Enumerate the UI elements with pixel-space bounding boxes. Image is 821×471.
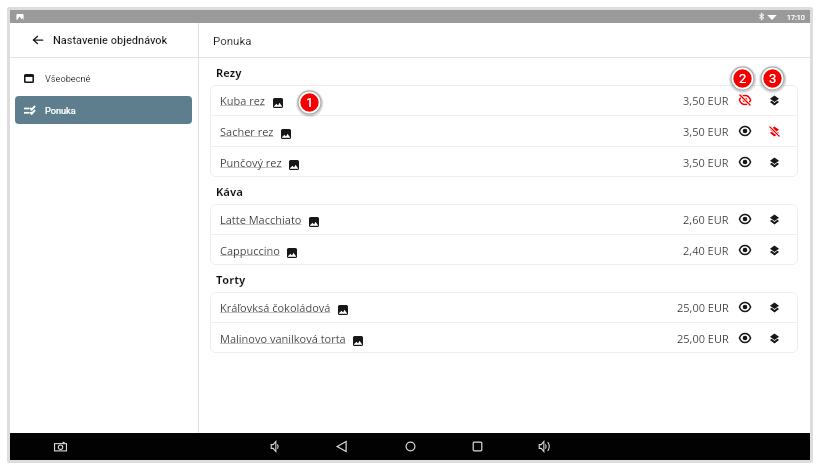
staticText: Kuba rez: [220, 93, 266, 108]
button[interactable]: Toggle layers: [765, 298, 783, 316]
staticText: 3,50 EUR: [683, 124, 729, 139]
button[interactable]: Toggle layers: [765, 329, 783, 347]
button[interactable]: Toggle layers: [765, 122, 783, 140]
button[interactable]: Toggle layers: [765, 91, 783, 109]
button[interactable]: Volume up: [532, 433, 556, 460]
button[interactable]: Punčový rez: [210, 147, 798, 177]
button[interactable]: Cappuccino: [210, 235, 798, 265]
button[interactable]: Back: [329, 433, 353, 460]
staticText: 17:10: [787, 13, 805, 21]
button[interactable]: Toggle layers: [765, 153, 783, 171]
staticText: Torty: [216, 272, 246, 287]
staticText: 2: [739, 71, 747, 86]
staticText: Nastavenie objednávok: [53, 34, 168, 47]
staticText: 25,00 EUR: [677, 300, 729, 315]
button[interactable]: Toggle visibility: [736, 298, 754, 316]
staticText: Ponuka: [45, 105, 76, 116]
staticText: 1: [306, 95, 314, 110]
button[interactable]: Kráľovksá čokoládová: [210, 292, 798, 322]
button[interactable]: Toggle visibility: [736, 241, 754, 259]
staticText: Latte Macchiato: [220, 212, 302, 227]
button[interactable]: Latte Macchiato: [210, 204, 798, 234]
button[interactable]: Toggle layers: [765, 241, 783, 259]
staticText: 3: [769, 71, 777, 86]
staticText: Cappuccino: [220, 243, 280, 258]
button[interactable]: Home: [398, 433, 422, 460]
button[interactable]: Kuba rez: [210, 85, 798, 115]
button[interactable]: Malinovo vanilková torta: [210, 323, 798, 353]
button[interactable]: Toggle visibility: [736, 122, 754, 140]
staticText: Všeobecné: [45, 73, 91, 84]
staticText: Káva: [216, 184, 243, 199]
button[interactable]: Ponuka: [15, 96, 192, 124]
button[interactable]: Toggle visibility: [736, 329, 754, 347]
button[interactable]: Volume down: [264, 433, 288, 460]
button[interactable]: Recents: [465, 433, 489, 460]
staticText: 2,40 EUR: [683, 243, 729, 258]
staticText: Punčový rez: [220, 155, 282, 170]
button[interactable]: Toggle visibility: [736, 153, 754, 171]
button[interactable]: Back: [25, 23, 50, 57]
button[interactable]: Screenshot: [48, 433, 72, 460]
button[interactable]: Toggle visibility: [736, 210, 754, 228]
button[interactable]: Sacher rez: [210, 116, 798, 146]
button[interactable]: Toggle layers: [765, 210, 783, 228]
staticText: Kráľovksá čokoládová: [220, 300, 331, 315]
staticText: 2,60 EUR: [683, 212, 729, 227]
staticText: Ponuka: [213, 34, 252, 47]
button[interactable]: Všeobecné: [15, 64, 192, 92]
staticText: 3,50 EUR: [683, 155, 729, 170]
staticText: Rezy: [216, 65, 242, 80]
staticText: 3,50 EUR: [683, 93, 729, 108]
button[interactable]: Toggle visibility: [736, 91, 754, 109]
staticText: Malinovo vanilková torta: [220, 331, 346, 346]
staticText: 25,00 EUR: [677, 331, 729, 346]
staticText: Sacher rez: [220, 124, 274, 139]
